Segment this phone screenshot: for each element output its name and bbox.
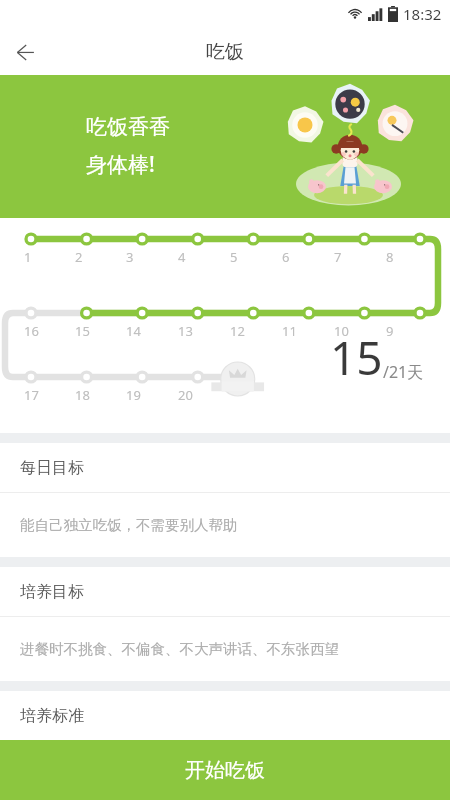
button[interactable]: 培养标准 <box>0 691 450 740</box>
staticText: 14 <box>126 322 141 340</box>
staticText: 1 <box>24 248 32 266</box>
staticText: 培养标准 <box>20 706 84 726</box>
button[interactable]: 每日目标 <box>0 443 450 492</box>
staticText: 每日目标 <box>20 458 84 478</box>
staticText: 进餐时不挑食、不偏食、不大声讲话、不东张西望 <box>20 640 339 658</box>
staticText: 11 <box>282 322 297 340</box>
staticText: 4 <box>178 248 186 266</box>
staticText: 吃饭香香 <box>86 114 170 140</box>
button[interactable]: 开始吃饭 <box>0 740 450 800</box>
staticText: 15 <box>330 326 383 389</box>
staticText: 12 <box>230 322 245 340</box>
staticText: 13 <box>178 322 193 340</box>
staticText: 开始吃饭 <box>185 758 265 783</box>
staticText: 19 <box>126 386 141 404</box>
staticText: 8 <box>386 248 394 266</box>
staticText: 16 <box>24 322 39 340</box>
staticText: 2 <box>75 248 83 266</box>
staticText: 5 <box>230 248 238 266</box>
staticText: 9 <box>386 322 394 340</box>
staticText: 18:32 <box>403 4 442 24</box>
staticText: 吃饭 <box>206 40 244 64</box>
button[interactable]: 培养目标 <box>0 567 450 616</box>
staticText: 10 <box>334 322 349 340</box>
button[interactable]: Back <box>0 28 48 75</box>
staticText: 18 <box>75 386 90 404</box>
staticText: 20 <box>178 386 193 404</box>
staticText: 培养目标 <box>20 582 84 602</box>
staticText: 身体棒! <box>86 150 155 179</box>
staticText: 6 <box>282 248 290 266</box>
staticText: 7 <box>334 248 342 266</box>
staticText: /21天 <box>383 361 424 383</box>
staticText: 15 <box>75 322 90 340</box>
staticText: 3 <box>126 248 134 266</box>
staticText: 17 <box>24 386 39 404</box>
staticText: 能自己独立吃饭，不需要别人帮助 <box>20 516 238 534</box>
